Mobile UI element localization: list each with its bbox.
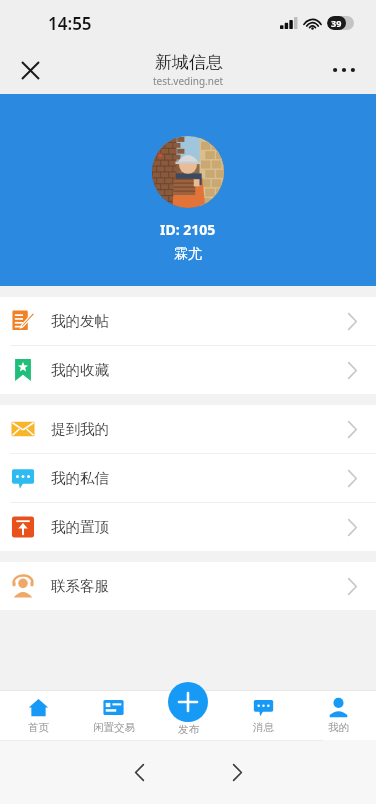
staticText: 发布	[178, 723, 199, 736]
button[interactable]: 提到我的	[0, 405, 376, 453]
staticText: 我的	[328, 721, 349, 734]
button[interactable]: Avatar	[152, 136, 224, 208]
button[interactable]: 首页	[0, 690, 76, 740]
staticText: 我的发帖	[51, 312, 109, 330]
staticText: 我的置顶	[51, 518, 109, 536]
staticText: 提到我的	[51, 420, 109, 438]
button[interactable]: Close	[10, 50, 50, 90]
staticText: ID: 2105	[160, 220, 216, 239]
button[interactable]: More options	[324, 50, 364, 90]
staticText: 霖尤	[174, 245, 202, 263]
staticText: test.veding.net	[153, 74, 224, 88]
button[interactable]: 我的私信	[0, 454, 376, 502]
staticText: 消息	[253, 721, 274, 734]
button[interactable]: 我的收藏	[0, 346, 376, 394]
staticText: 首页	[28, 721, 49, 734]
button[interactable]: Forward	[215, 750, 259, 794]
staticText: 新城信息	[155, 52, 223, 73]
button[interactable]: 闲置交易	[76, 690, 151, 740]
button[interactable]: 消息	[226, 690, 301, 740]
button[interactable]: 联系客服	[0, 562, 376, 610]
button[interactable]: 我的置顶	[0, 503, 376, 551]
staticText: 我的收藏	[51, 361, 109, 379]
staticText: 我的私信	[51, 469, 109, 487]
staticText: 14:55	[48, 12, 92, 35]
button[interactable]: 发布	[168, 682, 208, 722]
button[interactable]: Back	[117, 750, 161, 794]
staticText: 39	[331, 17, 342, 29]
button[interactable]: 我的发帖	[0, 297, 376, 345]
staticText: 联系客服	[51, 577, 109, 595]
button[interactable]: 我的	[301, 690, 376, 740]
staticText: 闲置交易	[93, 721, 135, 734]
